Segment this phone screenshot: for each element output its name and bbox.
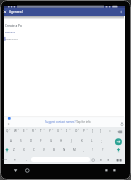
staticText: T [40, 129, 42, 133]
button[interactable] [22, 166, 34, 176]
staticText: Create a Post [5, 24, 22, 29]
staticText: ?123 [2, 158, 7, 161]
staticText: #general [5, 30, 16, 33]
button[interactable] [117, 10, 125, 17]
staticText: ! [92, 148, 93, 152]
staticText: D [30, 139, 33, 143]
staticText: H [60, 139, 63, 143]
button[interactable] [2, 10, 9, 17]
staticText: C [33, 148, 35, 152]
staticText: K [81, 139, 83, 143]
staticText: ? [102, 148, 104, 152]
staticText: Y [49, 129, 51, 133]
staticText: , [83, 148, 84, 152]
staticText: #general [9, 10, 23, 14]
staticText: M [73, 148, 76, 152]
staticText: E [23, 129, 25, 133]
staticText: Q [6, 129, 9, 133]
staticText: ; [101, 139, 102, 143]
staticText: Suggest contact names? Tap for info [45, 120, 91, 124]
staticText: J [71, 139, 72, 143]
staticText: U [57, 129, 60, 133]
staticText: ] [100, 129, 101, 133]
staticText: = [109, 129, 111, 133]
staticText: A [10, 139, 12, 143]
staticText: P [83, 129, 85, 133]
button[interactable] [4, 117, 125, 127]
button[interactable] [10, 166, 22, 176]
staticText: X [23, 148, 25, 152]
staticText: [ [92, 129, 93, 133]
staticText: F [40, 139, 42, 143]
button[interactable] [4, 8, 125, 16]
staticText: V [43, 148, 45, 152]
staticText: S [20, 139, 22, 143]
staticText: W [14, 129, 17, 133]
staticText: , [26, 157, 27, 161]
button[interactable]: What's on your mind? [5, 37, 18, 41]
staticText: G [50, 139, 53, 143]
staticText: R [32, 129, 34, 133]
staticText: N [63, 148, 66, 152]
staticText: L [91, 139, 93, 143]
staticText: Z [13, 148, 15, 152]
staticText: O [75, 129, 78, 133]
button[interactable] [114, 138, 124, 146]
staticText: I [66, 129, 68, 133]
staticText: B [53, 148, 55, 152]
